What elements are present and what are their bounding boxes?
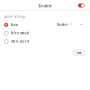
- staticText: Next: [76, 51, 81, 55]
- staticText: Launch settings: [4, 15, 25, 18]
- button[interactable]: Next: [73, 50, 85, 56]
- staticText: Text to speech: [11, 40, 30, 43]
- button[interactable]: Select manual: [0, 29, 52, 37]
- staticText: Number: [57, 23, 68, 26]
- button[interactable]: Show: [0, 21, 52, 29]
- button[interactable]: Enable: [78, 3, 85, 7]
- staticText: Enable: [38, 3, 51, 8]
- staticText: Select manual: [11, 31, 29, 35]
- button[interactable]: Adjust number: [79, 22, 84, 27]
- staticText: Show: [11, 23, 18, 27]
- button[interactable]: Text to speech: [0, 37, 52, 46]
- staticText: 1: [71, 23, 73, 26]
